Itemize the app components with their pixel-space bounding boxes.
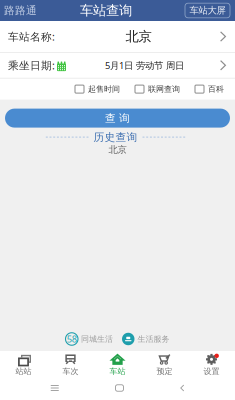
button[interactable]: 58	[65, 333, 113, 345]
staticText: 同城生活	[81, 334, 113, 344]
button[interactable]: 预定	[141, 351, 188, 376]
button[interactable]: 车次	[47, 351, 94, 376]
button[interactable]: 车站名称:	[0, 21, 235, 52]
staticText: 乘坐日期:	[8, 58, 55, 72]
staticText: 路路通	[4, 4, 37, 17]
button[interactable]: 联网查询	[135, 84, 180, 94]
staticText: 58	[67, 333, 77, 345]
staticText: 查 询	[105, 111, 130, 125]
button[interactable]: Back	[174, 378, 190, 397]
button[interactable]: 车站大屏	[185, 3, 230, 18]
staticText: 北京	[108, 144, 126, 155]
button[interactable]: 北京	[108, 145, 126, 155]
staticText: 车站名称:	[8, 29, 55, 44]
staticText: 车站查询	[80, 2, 132, 19]
staticText: 站站	[15, 366, 31, 376]
staticText: 车站	[109, 366, 125, 376]
button[interactable]: Recents	[45, 379, 65, 397]
staticText: 车站大屏	[189, 5, 225, 16]
button[interactable]: 查 询	[5, 109, 230, 128]
staticText: 预定	[156, 366, 172, 376]
button[interactable]: 百科	[195, 84, 224, 94]
button[interactable]: 设置	[188, 351, 235, 376]
staticText: 北京	[125, 28, 151, 45]
button[interactable]: Home	[109, 379, 129, 397]
staticText: 百科	[208, 84, 224, 94]
staticText: 5月1日 劳动节 周日	[105, 59, 184, 71]
staticText: 车次	[62, 366, 78, 376]
staticText: 历史查询	[93, 130, 137, 144]
button[interactable]: 起售时间	[75, 84, 120, 94]
staticText: 设置	[203, 366, 219, 376]
button[interactable]: 乘坐日期:	[0, 53, 235, 78]
staticText: 生活服务	[137, 334, 169, 344]
button[interactable]: 车站	[94, 351, 141, 376]
button[interactable]: 生活服务	[122, 333, 169, 345]
staticText: 联网查询	[148, 84, 180, 94]
staticText: 起售时间	[88, 84, 120, 94]
button[interactable]: 站站	[0, 351, 47, 376]
